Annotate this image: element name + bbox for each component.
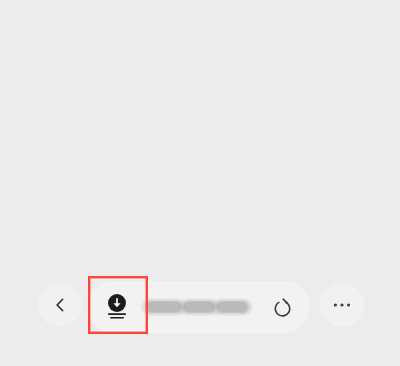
button[interactable]: Downloads <box>88 281 146 333</box>
button[interactable] <box>146 281 256 333</box>
button[interactable]: More options <box>320 283 364 327</box>
button[interactable]: Refresh <box>260 281 304 333</box>
button[interactable]: Back <box>38 283 82 327</box>
